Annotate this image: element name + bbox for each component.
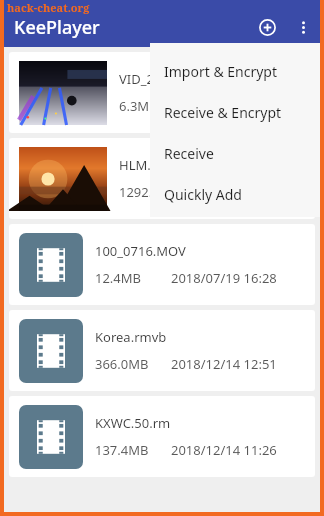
staticText: VID_2: [119, 70, 154, 88]
staticText: 2018/12/14 12:51: [171, 355, 277, 373]
staticText: 100_0716.MOV: [95, 242, 186, 260]
staticText: KXWC.50.rm: [95, 414, 171, 432]
staticText: Korea.rmvb: [95, 328, 167, 346]
staticText: Receive: [164, 144, 214, 163]
staticText: KeePlayer: [14, 15, 100, 40]
staticText: 366.0MB: [95, 355, 149, 373]
button[interactable]: More options: [286, 10, 320, 44]
staticText: Receive & Encrypt: [164, 103, 282, 122]
staticText: 2018/07/19 16:28: [171, 269, 277, 287]
button[interactable]: Korea.rmvb: [9, 310, 315, 391]
staticText: HLM.0: [119, 156, 159, 174]
staticText: 1292.3: [119, 183, 160, 201]
staticText: Quickly Add: [164, 185, 242, 204]
button[interactable]: Receive & Encrypt: [150, 92, 320, 133]
button[interactable]: Add: [248, 8, 286, 46]
button[interactable]: Import & Encrypt: [150, 51, 320, 92]
staticText: 137.4MB: [95, 441, 149, 459]
staticText: 12.4MB: [95, 269, 142, 287]
staticText: hack-cheat.org: [7, 0, 90, 15]
button[interactable]: VID_2: [9, 52, 315, 133]
button[interactable]: HLM.0: [9, 138, 315, 219]
staticText: Import & Encrypt: [164, 62, 278, 81]
staticText: 6.3MB: [119, 97, 158, 115]
staticText: 2018/12/14 11:26: [171, 441, 277, 459]
button[interactable]: Quickly Add: [150, 174, 320, 215]
button[interactable]: KXWC.50.rm: [9, 396, 315, 477]
button[interactable]: 100_0716.MOV: [9, 224, 315, 305]
button[interactable]: Receive: [150, 133, 320, 174]
